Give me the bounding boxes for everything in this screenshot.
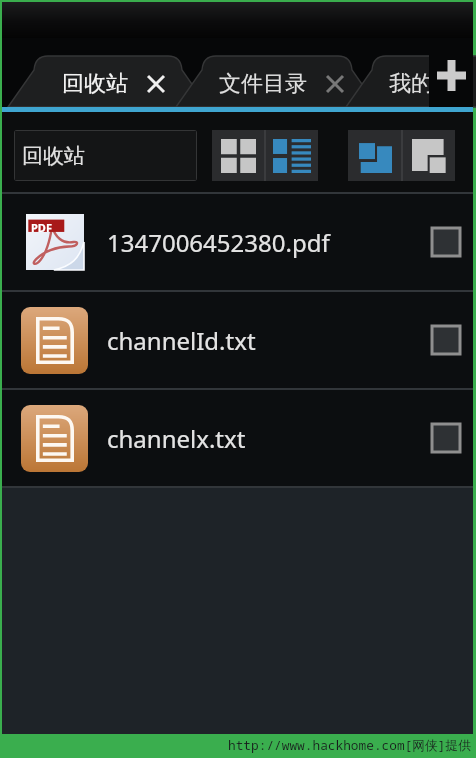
button[interactable]: New tab xyxy=(429,38,473,107)
button[interactable]: 我的 xyxy=(346,60,476,108)
button[interactable]: Select channelx.txt xyxy=(432,424,460,452)
button[interactable]: 回收站 xyxy=(8,60,208,108)
staticText: 我的 xyxy=(389,70,433,98)
button[interactable]: Select channelId.txt xyxy=(432,326,460,354)
staticText: 回收站 xyxy=(22,143,85,169)
button[interactable]: Select 1347006452380.pdf xyxy=(432,228,460,256)
button[interactable]: channelId.txt xyxy=(2,292,473,388)
staticText: 1347006452380.pdf xyxy=(107,226,330,259)
button[interactable]: PDF xyxy=(2,194,473,290)
button[interactable]: Grid view xyxy=(212,130,264,181)
button[interactable]: 回收站 xyxy=(14,130,197,181)
button[interactable]: List view xyxy=(266,130,318,181)
button[interactable]: 文件目录 xyxy=(176,60,378,108)
staticText: 回收站 xyxy=(62,70,128,98)
button[interactable]: Arrange A xyxy=(348,130,401,181)
staticText: channelx.txt xyxy=(107,422,246,455)
staticText: channelId.txt xyxy=(107,324,256,357)
staticText: PDF xyxy=(31,220,52,235)
staticText: http://www.hackhome.com[网侠]提供 xyxy=(228,736,472,753)
button[interactable]: channelx.txt xyxy=(2,390,473,486)
button[interactable]: Arrange B xyxy=(403,130,455,181)
staticText: 文件目录 xyxy=(219,70,307,98)
